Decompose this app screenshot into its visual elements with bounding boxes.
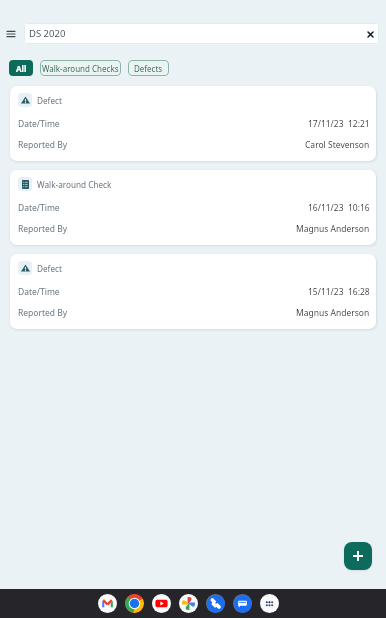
staticText: Walk-around Check [37, 179, 112, 190]
button[interactable]: Phone [206, 594, 225, 613]
staticText: DS 2020 [29, 27, 66, 40]
staticText: Magnus Anderson [296, 307, 370, 319]
button[interactable]: DS 2020 [24, 23, 379, 44]
button[interactable]: Add [344, 542, 372, 570]
staticText: Date/Time [18, 118, 60, 130]
button[interactable]: Messages [233, 594, 252, 613]
button[interactable]: Gmail [98, 594, 117, 613]
staticText: 17/11/23 12:21 [308, 118, 370, 130]
staticText: Reported By [18, 307, 68, 319]
staticText: 16/11/23 10:16 [308, 202, 370, 214]
button[interactable]: Walk-around Check [10, 170, 376, 245]
staticText: All [16, 63, 27, 74]
staticText: Magnus Anderson [296, 223, 370, 235]
staticText: Reported By [18, 223, 68, 235]
button[interactable]: Clear [363, 27, 377, 41]
staticText: Reported By [18, 139, 68, 151]
button[interactable]: Defect [10, 86, 376, 161]
button[interactable]: Defects [128, 60, 169, 76]
button[interactable]: Walk-around Checks [40, 60, 121, 76]
staticText: Defects [134, 63, 163, 74]
button[interactable]: Chrome [125, 594, 144, 613]
button[interactable]: All [9, 60, 33, 76]
button[interactable]: YouTube [152, 594, 171, 613]
button[interactable]: All apps [260, 594, 279, 613]
staticText: Defect [37, 263, 62, 274]
staticText: Carol Stevenson [305, 139, 370, 151]
staticText: 15/11/23 16:28 [308, 286, 370, 298]
staticText: Date/Time [18, 202, 60, 214]
button[interactable]: Defect [10, 254, 376, 329]
staticText: Date/Time [18, 286, 60, 298]
button[interactable]: Menu [0, 23, 23, 44]
button[interactable]: Photos [179, 594, 198, 613]
staticText: Walk-around Checks [42, 63, 119, 74]
staticText: Defect [37, 95, 62, 106]
